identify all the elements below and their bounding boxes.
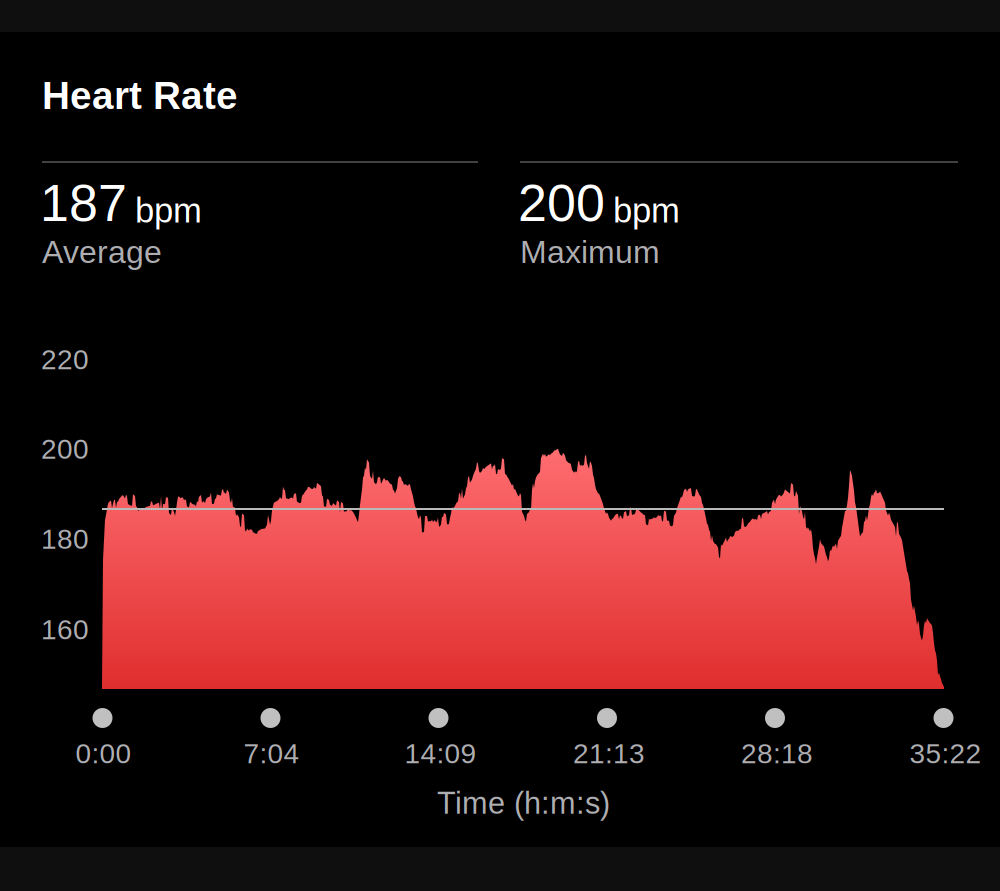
staticText: 14:09	[404, 738, 476, 769]
button[interactable]: Heart rate over time, average 187 bpm	[102, 449, 944, 689]
staticText: Maximum	[520, 234, 660, 270]
staticText: bpm	[135, 191, 202, 230]
staticText: 21:13	[573, 738, 645, 769]
button[interactable]: 187	[42, 161, 478, 273]
staticText: 160	[41, 614, 89, 645]
staticText: Heart Rate	[42, 74, 238, 117]
staticText: 220	[41, 344, 89, 375]
staticText: 7:04	[243, 738, 299, 769]
button[interactable]: 200	[520, 161, 958, 273]
staticText: 35:22	[909, 738, 981, 769]
staticText: 0:00	[75, 738, 131, 769]
staticText: 187	[40, 174, 127, 232]
staticText: Average	[42, 234, 162, 270]
staticText: 200	[41, 433, 89, 465]
staticText: Time (h:m:s)	[437, 786, 610, 820]
staticText: 200	[518, 174, 605, 232]
staticText: 180	[41, 523, 89, 555]
staticText: 28:18	[741, 738, 813, 769]
staticText: bpm	[613, 191, 680, 230]
